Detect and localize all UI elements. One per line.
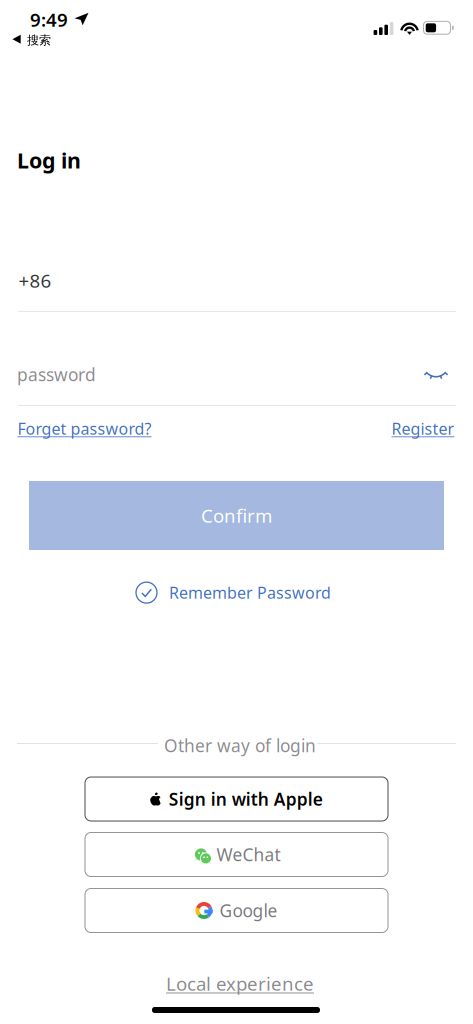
button[interactable]: WeChat <box>85 832 388 876</box>
button[interactable]: Confirm <box>29 481 444 550</box>
staticText: Log in <box>17 146 81 174</box>
staticText: Local experience <box>166 971 314 996</box>
button[interactable]: Google <box>85 888 388 932</box>
staticText: Confirm <box>201 503 272 528</box>
staticText: Forget password? <box>17 418 151 439</box>
staticText: Remember Password <box>169 582 331 603</box>
button[interactable]: Local experience <box>166 971 314 996</box>
staticText: 搜索 <box>27 33 51 48</box>
staticText: +86 <box>18 268 51 293</box>
staticText: Google <box>219 899 277 922</box>
button[interactable]: Forget password? <box>17 418 151 439</box>
staticText: WeChat <box>216 843 280 866</box>
staticText: Sign in with Apple <box>169 787 323 810</box>
staticText: Other way of login <box>164 734 316 757</box>
staticText: 9:49 <box>30 7 68 32</box>
button[interactable]: Register <box>391 418 454 439</box>
button[interactable]: Sign in with Apple <box>85 777 388 821</box>
staticText: password <box>17 363 96 386</box>
button[interactable]: Remember Password <box>136 582 331 603</box>
staticText: Register <box>391 418 454 439</box>
button[interactable]: Show password <box>417 361 455 392</box>
